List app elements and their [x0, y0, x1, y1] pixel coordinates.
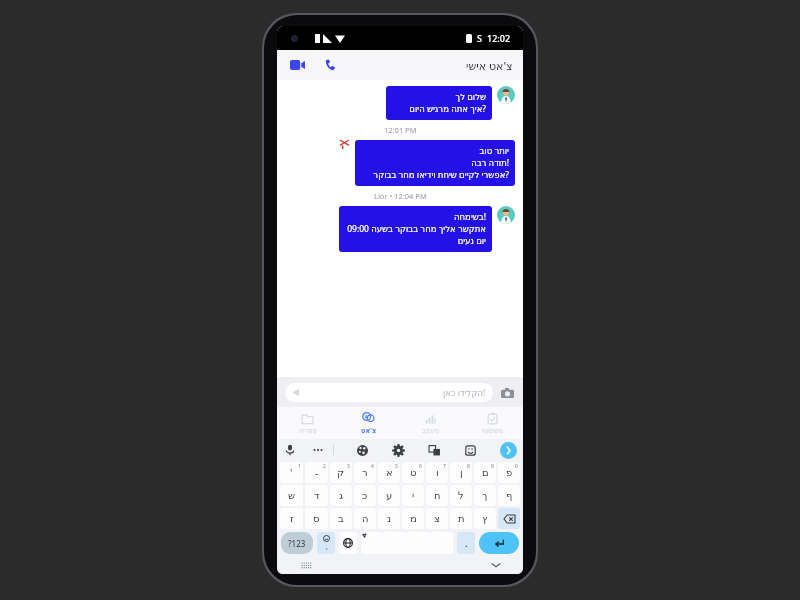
button[interactable]: יותר טוב — [355, 140, 515, 186]
staticText: 12:01 PM — [384, 125, 417, 135]
staticText: 9 — [491, 463, 494, 470]
button[interactable]: צ — [426, 508, 448, 529]
staticText: ם — [482, 467, 489, 479]
button[interactable]: Stickers — [464, 444, 477, 457]
button[interactable]: הקלידו כאן! — [285, 383, 493, 402]
button[interactable]: ת — [450, 508, 472, 529]
staticText: , — [326, 542, 328, 552]
staticText: הקלידו כאן! — [443, 387, 486, 399]
staticText: צ'אט אישי — [466, 58, 513, 73]
staticText: ר — [362, 467, 368, 479]
button[interactable]: Space — [361, 532, 453, 554]
button[interactable]: ח — [426, 485, 448, 506]
staticText: ת — [458, 513, 465, 525]
staticText: א — [386, 467, 393, 479]
staticText: צ'אט — [361, 426, 377, 435]
staticText: ף — [506, 490, 513, 502]
button[interactable]: ד — [305, 485, 328, 506]
staticText: 6 — [419, 463, 422, 470]
staticText: ע — [386, 490, 393, 502]
button[interactable]: ק — [330, 462, 352, 483]
button[interactable]: ר — [354, 462, 376, 483]
staticText: מעקב — [422, 427, 439, 435]
staticText: משימות — [482, 427, 503, 435]
button[interactable]: ה — [354, 508, 376, 529]
staticText: איך אתה מרגיש היום? — [392, 103, 486, 115]
button[interactable]: - — [305, 462, 328, 483]
staticText: ד — [314, 490, 320, 502]
button[interactable]: ספריה — [277, 407, 338, 439]
button[interactable]: ?123 — [281, 532, 313, 554]
staticText: S — [477, 32, 482, 44]
staticText: י — [412, 490, 415, 502]
staticText: צ — [434, 513, 440, 525]
button[interactable]: Voice call — [320, 54, 342, 76]
button[interactable]: שלום לך — [386, 86, 492, 120]
staticText: 3 — [347, 463, 350, 470]
staticText: ל — [458, 490, 464, 502]
button[interactable]: ג — [330, 485, 352, 506]
button[interactable]: מעקב — [399, 407, 461, 439]
button[interactable]: Themes — [356, 444, 369, 457]
button[interactable]: Translate — [428, 444, 441, 457]
staticText: אפשרי לקיים שיחת וידיאו מחר בבוקר? — [361, 169, 509, 181]
staticText: ח — [434, 490, 441, 502]
button[interactable]: ף — [498, 485, 520, 506]
staticText: ן — [460, 467, 463, 479]
button[interactable]: Video call — [286, 54, 308, 76]
button[interactable]: ם — [474, 462, 496, 483]
button[interactable]: Hide keyboard — [489, 558, 503, 572]
staticText: ך — [482, 490, 488, 502]
button[interactable]: ז — [280, 508, 303, 529]
button[interactable]: ש — [280, 485, 303, 506]
staticText: נ — [387, 513, 392, 525]
button[interactable]: ע — [378, 485, 400, 506]
button[interactable]: פ — [498, 462, 520, 483]
button[interactable]: ' — [280, 462, 303, 483]
button[interactable]: א — [378, 462, 400, 483]
staticText: יום נעים — [345, 235, 486, 247]
staticText: 12:02 — [487, 32, 511, 44]
staticText: ?123 — [288, 538, 306, 549]
staticText: ו — [436, 467, 439, 479]
button[interactable]: ל — [450, 485, 472, 506]
button[interactable]: ט — [402, 462, 424, 483]
staticText: . — [465, 537, 468, 549]
button[interactable]: ן — [450, 462, 472, 483]
button[interactable]: בשימחה! — [339, 206, 492, 252]
button[interactable]: Change language — [339, 532, 357, 554]
staticText: שלום לך — [392, 91, 486, 103]
staticText: 2 — [323, 463, 326, 470]
button[interactable]: ך — [474, 485, 496, 506]
button[interactable]: כ — [354, 485, 376, 506]
button[interactable]: ץ — [474, 508, 496, 529]
button[interactable]: Enter — [479, 532, 519, 554]
staticText: ט — [410, 467, 417, 479]
staticText: Lior • 12:04 PM — [374, 191, 427, 201]
staticText: ש — [288, 490, 296, 502]
button[interactable]: More options — [311, 443, 325, 457]
button[interactable]: Camera — [499, 385, 515, 401]
button[interactable]: משימות — [461, 407, 523, 439]
button[interactable]: Expand — [500, 442, 517, 459]
staticText: ג — [339, 490, 344, 502]
button[interactable]: ב — [330, 508, 352, 529]
staticText: 8 — [467, 463, 470, 470]
button[interactable]: Settings — [392, 444, 405, 457]
button[interactable]: Voice input — [283, 443, 297, 457]
button[interactable]: Emoji — [317, 532, 335, 554]
button[interactable]: נ — [378, 508, 400, 529]
staticText: ק — [337, 467, 345, 479]
button[interactable]: צ'אט — [338, 407, 399, 439]
staticText: פ — [506, 467, 513, 479]
button[interactable]: י — [402, 485, 424, 506]
staticText: 1 — [298, 463, 301, 470]
button[interactable]: ו — [426, 462, 448, 483]
staticText: ה — [362, 513, 369, 525]
button[interactable]: . — [457, 532, 475, 554]
button[interactable]: מ — [402, 508, 424, 529]
button[interactable]: ס — [305, 508, 328, 529]
staticText: יותר טוב — [361, 145, 509, 157]
button[interactable]: Backspace — [498, 508, 520, 529]
staticText: 5 — [395, 463, 398, 470]
